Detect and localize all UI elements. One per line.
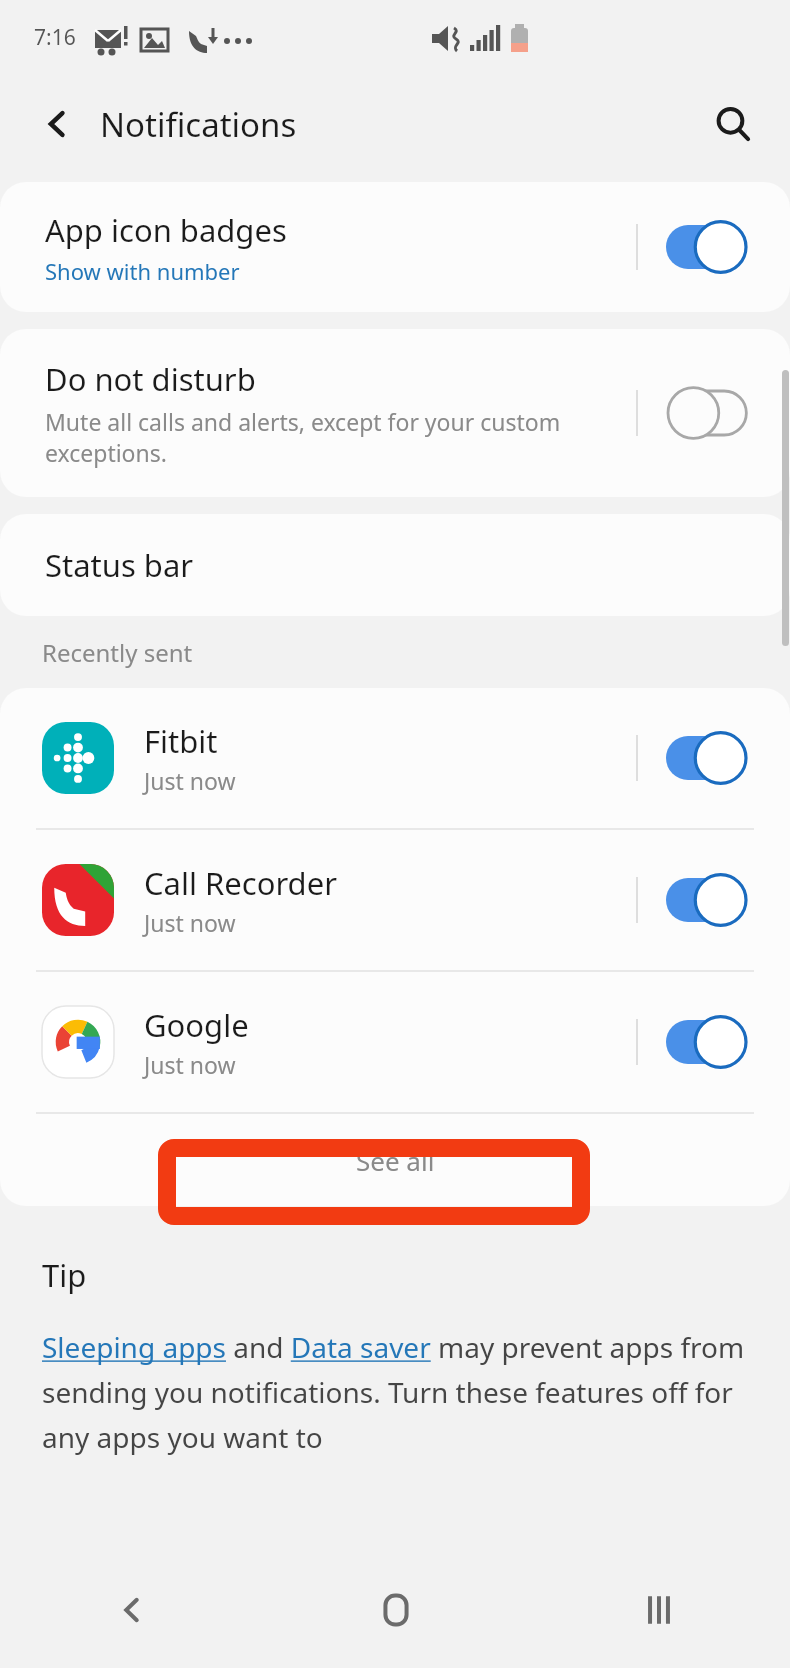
staticText: See all [356, 1143, 435, 1178]
button[interactable]: Search [698, 89, 768, 159]
staticText: Notifications [100, 102, 297, 147]
staticText: Call Recorder [144, 862, 337, 904]
button[interactable]: Recents [527, 1552, 790, 1668]
button[interactable]: Toggle on [666, 873, 748, 927]
button[interactable]: Status bar [0, 514, 790, 616]
staticText: Mute all calls and alerts, except for yo… [45, 406, 622, 469]
staticText: Just now [144, 907, 236, 938]
button[interactable]: Toggle on [666, 731, 748, 785]
staticText: Google [144, 1004, 249, 1046]
button[interactable]: See all [0, 1114, 790, 1206]
staticText: Recently sent [42, 636, 193, 669]
button[interactable]: Toggle on [666, 220, 748, 274]
button[interactable]: Call Recorder [0, 830, 790, 970]
staticText: Do not disturb [45, 358, 256, 400]
button[interactable]: Toggle off [666, 386, 748, 440]
button[interactable]: Fitbit [0, 688, 790, 828]
button[interactable]: Do not disturb [0, 329, 790, 497]
button[interactable]: Home [264, 1552, 527, 1668]
staticText: Show with number [45, 256, 240, 286]
staticText: Fitbit [144, 720, 218, 762]
staticText: App icon badges [45, 209, 287, 251]
button[interactable]: Back [0, 1552, 264, 1668]
staticText: Tip [42, 1254, 87, 1296]
staticText: Sleeping apps and Data saver may prevent… [42, 1328, 756, 1457]
button[interactable]: App icon badges [0, 182, 790, 312]
staticText: 7:16 [34, 23, 76, 52]
staticText: Status bar [45, 544, 194, 586]
button[interactable]: Google [0, 972, 790, 1112]
staticText: Just now [144, 765, 236, 796]
button[interactable]: Toggle on [666, 1015, 748, 1069]
staticText: Just now [144, 1049, 236, 1080]
button[interactable]: Back [22, 89, 92, 159]
